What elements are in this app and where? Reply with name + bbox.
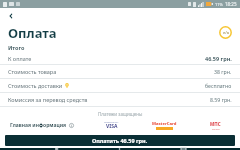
button[interactable]: Стоимость доставки bbox=[0, 79, 240, 92]
staticText: 8.59 грн. bbox=[210, 96, 232, 103]
staticText: secure bbox=[212, 127, 220, 130]
button[interactable]: Назад bbox=[49, 148, 63, 150]
staticText: Итого bbox=[8, 44, 25, 51]
button[interactable]: Назад bbox=[4, 9, 18, 23]
staticText: 11% bbox=[215, 2, 223, 7]
button[interactable]: Стоимость товара bbox=[0, 65, 240, 78]
staticText: MasterCard bbox=[152, 121, 177, 127]
staticText: e/a bbox=[223, 30, 229, 35]
button[interactable]: Помощь bbox=[219, 26, 232, 39]
staticText: Главная информация bbox=[10, 122, 67, 129]
staticText: VERIFIED BY bbox=[104, 120, 119, 123]
staticText: 38 грн. bbox=[214, 68, 232, 75]
staticText: Оплатить 46.59 грн. bbox=[92, 137, 148, 144]
staticText: Стоимость товара bbox=[8, 68, 57, 75]
staticText: Платежи защищены bbox=[98, 111, 143, 117]
button[interactable]: Обзор bbox=[176, 148, 190, 150]
staticText: VISA bbox=[106, 123, 118, 130]
staticText: бесплатно bbox=[205, 82, 232, 89]
staticText: Стоимость доставки bbox=[8, 82, 63, 89]
button[interactable]: Главная информация bbox=[10, 120, 74, 131]
staticText: Оплата bbox=[8, 24, 57, 42]
button[interactable]: Домой bbox=[112, 148, 126, 150]
staticText: К оплате bbox=[8, 55, 32, 62]
staticText: 46.59 грн. bbox=[205, 55, 232, 62]
staticText: Комиссия за перевод средств bbox=[8, 96, 88, 103]
button[interactable]: Оплатить 46.59 грн. bbox=[5, 135, 235, 146]
staticText: 18:25 bbox=[225, 1, 237, 7]
staticText: МПС bbox=[210, 121, 221, 127]
button[interactable]: Комиссия за перевод средств bbox=[0, 93, 240, 106]
button[interactable]: К оплате bbox=[0, 52, 240, 64]
